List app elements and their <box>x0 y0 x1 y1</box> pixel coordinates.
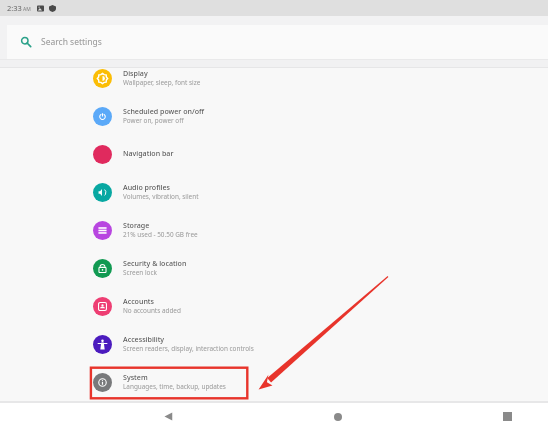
button[interactable]: System <box>0 363 548 401</box>
staticText: 2:33 <box>7 3 22 13</box>
staticText: Navigation bar <box>123 148 174 158</box>
staticText: Security & location <box>123 258 187 268</box>
staticText: 21% used - 50.50 GB free <box>123 230 198 239</box>
staticText: Storage <box>123 220 150 230</box>
button[interactable]: Search settings <box>7 25 548 60</box>
button[interactable]: Back <box>148 403 188 430</box>
button[interactable]: Recent apps <box>487 403 527 430</box>
staticText: Display <box>123 68 148 78</box>
button[interactable]: Security & location <box>0 249 548 287</box>
staticText: Audio profiles <box>123 182 171 192</box>
button[interactable]: Navigation bar <box>0 135 548 173</box>
button[interactable]: Audio profiles <box>0 173 548 211</box>
staticText: Volumes, vibration, silent <box>123 192 199 201</box>
staticText: Search settings <box>41 36 102 48</box>
button[interactable]: Home <box>318 403 358 430</box>
staticText: Accounts <box>123 296 155 306</box>
staticText: Screen lock <box>123 268 157 277</box>
staticText: No accounts added <box>123 306 181 315</box>
staticText: Languages, time, backup, updates <box>123 382 226 391</box>
staticText: System <box>123 372 148 382</box>
staticText: Power on, power off <box>123 116 184 125</box>
button[interactable]: Storage <box>0 211 548 249</box>
button[interactable]: Scheduled power on/off <box>0 97 548 135</box>
staticText: Accessibility <box>123 334 165 344</box>
staticText: Screen readers, display, interaction con… <box>123 344 254 353</box>
staticText: Scheduled power on/off <box>123 106 205 116</box>
staticText: Wallpaper, sleep, font size <box>123 78 201 87</box>
button[interactable]: Accounts <box>0 287 548 325</box>
staticText: AM <box>23 6 31 13</box>
button[interactable]: Accessibility <box>0 325 548 363</box>
button[interactable]: Display <box>0 59 548 97</box>
